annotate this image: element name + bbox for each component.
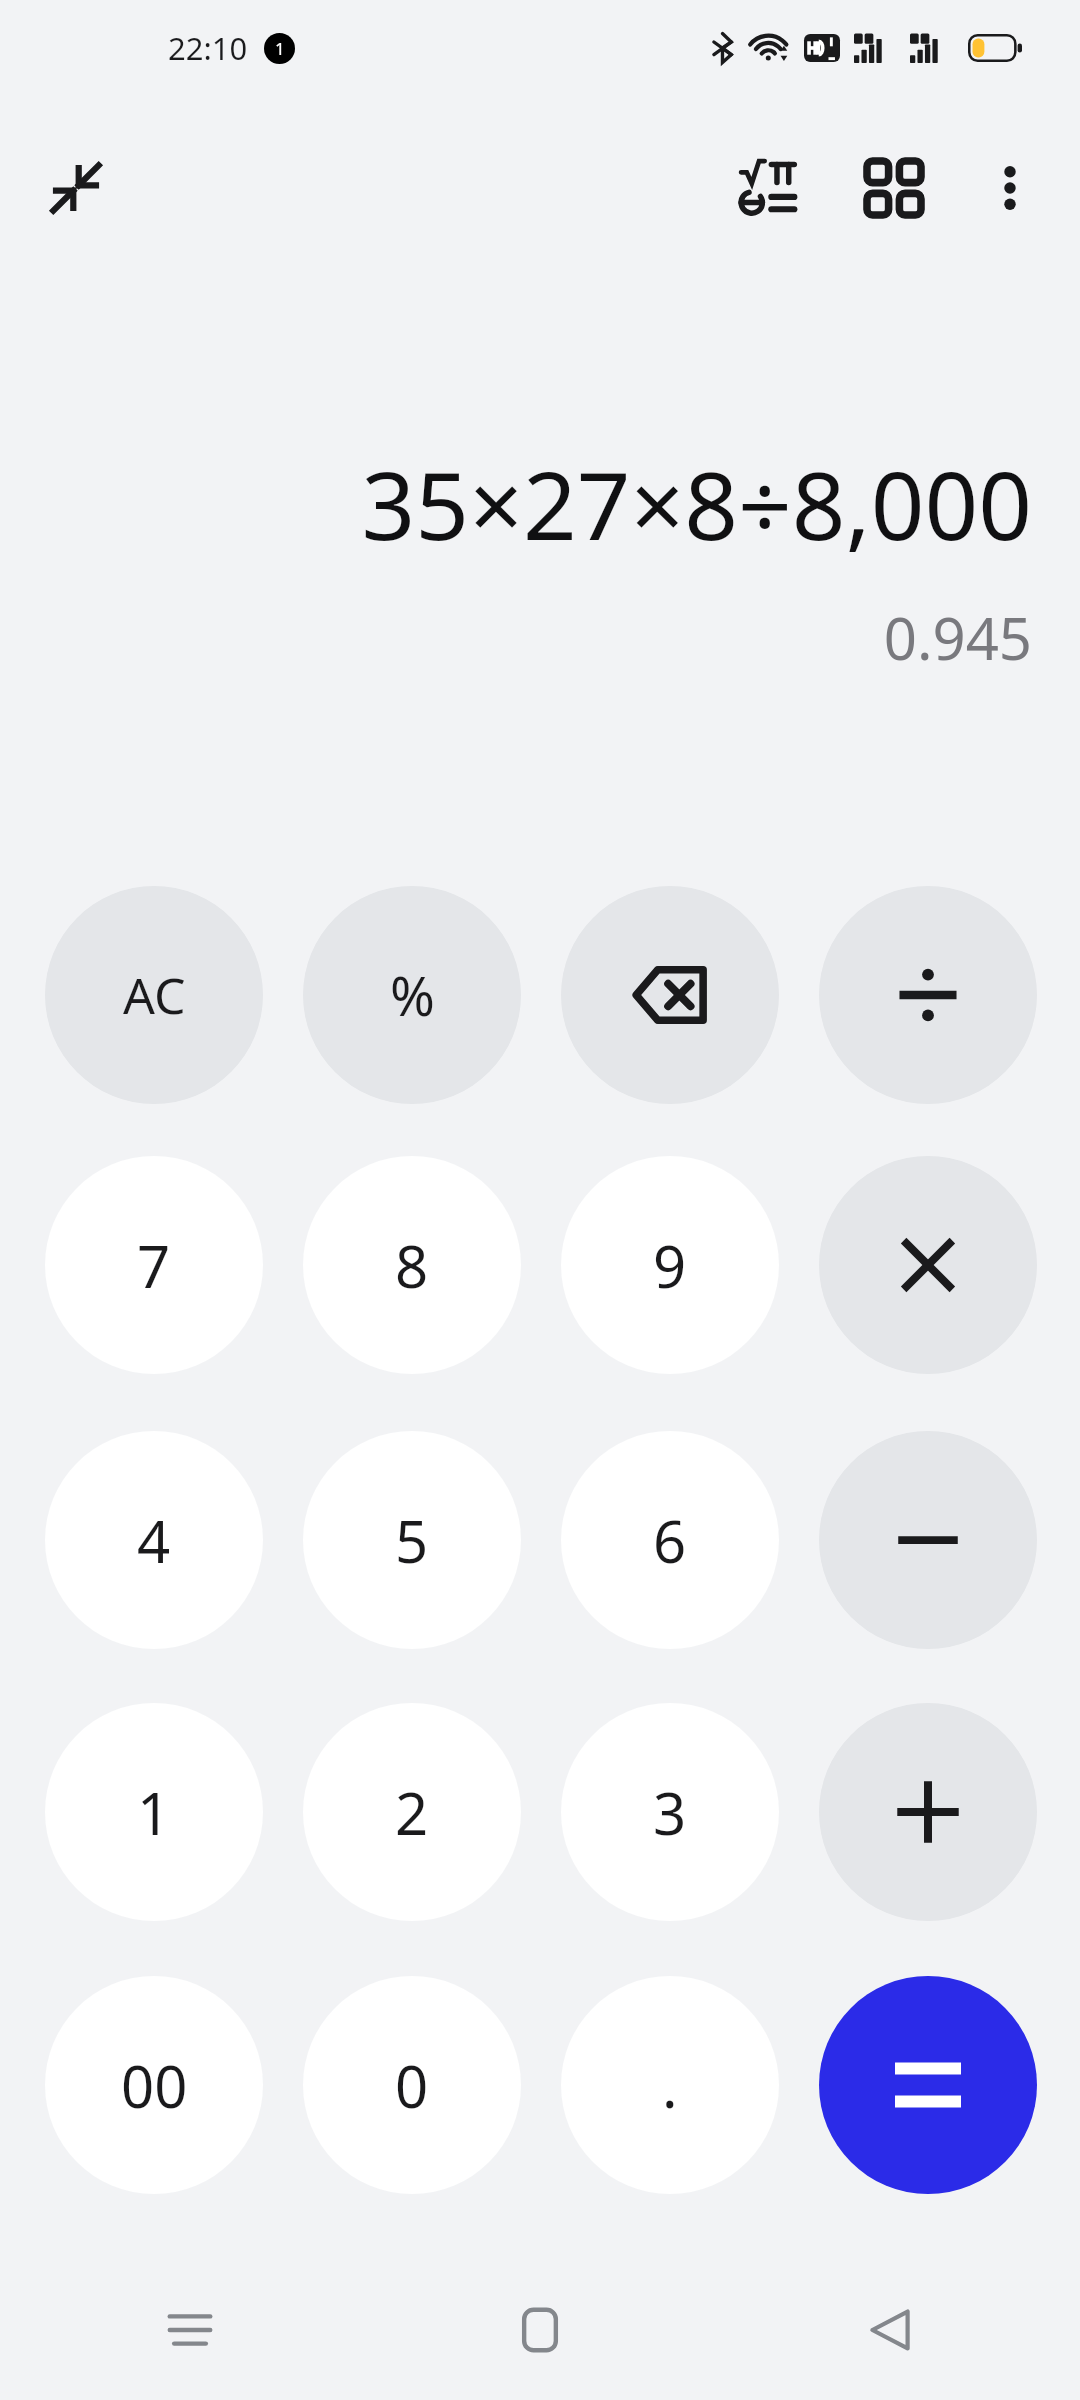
button[interactable]: 6 bbox=[561, 1431, 779, 1649]
button[interactable]: 5 bbox=[303, 1431, 521, 1649]
button[interactable]: 3 bbox=[561, 1703, 779, 1921]
staticText: 2 bbox=[395, 1773, 429, 1852]
button[interactable]: Divide bbox=[819, 886, 1037, 1104]
button[interactable]: Home bbox=[490, 2280, 590, 2380]
button[interactable]: 00 bbox=[45, 1976, 263, 2194]
button[interactable]: 1 bbox=[45, 1703, 263, 1921]
staticText: 00 bbox=[121, 2046, 188, 2125]
staticText: 1 bbox=[137, 1773, 171, 1852]
staticText: . bbox=[662, 2046, 678, 2125]
button[interactable]: 4 bbox=[45, 1431, 263, 1649]
button[interactable]: Backspace bbox=[561, 886, 779, 1104]
staticText: 8 bbox=[395, 1226, 429, 1305]
button[interactable]: 0 bbox=[303, 1976, 521, 2194]
staticText: 4 bbox=[137, 1501, 171, 1580]
staticText: 3 bbox=[653, 1773, 687, 1852]
staticText: % bbox=[390, 958, 435, 1032]
button[interactable]: . bbox=[561, 1976, 779, 2194]
button[interactable]: % bbox=[303, 886, 521, 1104]
staticText: 22:10 bbox=[168, 27, 248, 69]
button[interactable]: Collapse bbox=[30, 142, 122, 234]
button[interactable]: AC bbox=[45, 886, 263, 1104]
staticText: 7 bbox=[137, 1226, 171, 1305]
button[interactable]: Multiply bbox=[819, 1156, 1037, 1374]
staticText: 0.945 bbox=[883, 598, 1032, 677]
staticText: 6 bbox=[653, 1501, 687, 1580]
button[interactable]: Equals bbox=[819, 1976, 1037, 2194]
button[interactable]: 9 bbox=[561, 1156, 779, 1374]
staticText: 1 bbox=[275, 37, 285, 60]
staticText: 0 bbox=[395, 2046, 429, 2125]
button[interactable]: 8 bbox=[303, 1156, 521, 1374]
staticText: 35×27×8÷8,000 bbox=[361, 440, 1032, 568]
button[interactable]: Scientific mode bbox=[722, 142, 814, 234]
staticText: 5 bbox=[395, 1501, 429, 1580]
button[interactable]: 7 bbox=[45, 1156, 263, 1374]
staticText: AC bbox=[123, 961, 186, 1029]
button[interactable]: Add bbox=[819, 1703, 1037, 1921]
button[interactable]: Recent apps bbox=[140, 2280, 240, 2380]
button[interactable]: More options bbox=[964, 142, 1056, 234]
button[interactable]: 2 bbox=[303, 1703, 521, 1921]
staticText: 9 bbox=[653, 1226, 687, 1305]
button[interactable]: Subtract bbox=[819, 1431, 1037, 1649]
button[interactable]: Back bbox=[840, 2280, 940, 2380]
button[interactable]: Unit converter bbox=[848, 142, 940, 234]
